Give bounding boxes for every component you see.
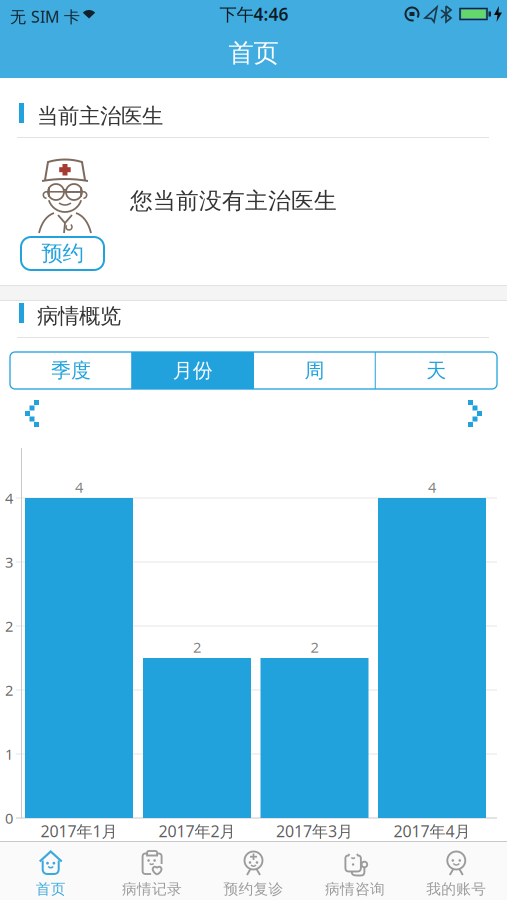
staticText: 我的账号 (426, 880, 486, 898)
staticText: 3 (5, 552, 13, 572)
staticText: 2017年4月 (393, 820, 470, 842)
button[interactable]: 下一页 (466, 399, 484, 427)
staticText: 预约 (41, 240, 83, 267)
staticText: 4 (428, 477, 436, 497)
staticText: 病情记录 (122, 880, 182, 898)
staticText: 预约复诊 (223, 880, 283, 898)
button[interactable]: 季度 (10, 352, 132, 389)
staticText: 2017年1月 (40, 820, 117, 842)
staticText: 4 (75, 477, 83, 497)
button[interactable]: 首页 (0, 840, 101, 900)
staticText: 4 (5, 488, 13, 508)
button[interactable]: 我的账号 (406, 840, 507, 900)
button[interactable]: 月份 (132, 352, 254, 389)
staticText: 1 (5, 744, 13, 764)
button[interactable]: 预约 (21, 237, 104, 270)
staticText: 2017年2月 (158, 820, 235, 842)
staticText: 月份 (173, 358, 213, 383)
staticText: 病情咨询 (325, 880, 385, 898)
staticText: 下午4:46 (219, 2, 288, 25)
staticText: 0 (5, 808, 13, 828)
staticText: 首页 (36, 880, 66, 898)
button[interactable]: 病情咨询 (304, 840, 406, 900)
staticText: 病情概览 (37, 303, 121, 329)
staticText: 无 SIM 卡 (10, 6, 80, 27)
staticText: 2 (5, 616, 13, 636)
button[interactable]: 周 (253, 352, 375, 389)
staticText: 2 (193, 637, 201, 657)
staticText: 天 (426, 358, 446, 383)
staticText: 首页 (228, 37, 278, 68)
staticText: 2017年3月 (276, 820, 353, 842)
button[interactable]: 天 (375, 352, 497, 389)
button[interactable]: 预约复诊 (203, 840, 304, 900)
staticText: 2 (310, 637, 318, 657)
staticText: 当前主治医生 (37, 103, 163, 129)
staticText: 2 (5, 680, 13, 700)
staticText: 您当前没有主治医生 (130, 187, 337, 215)
button[interactable]: 上一页 (23, 399, 41, 427)
staticText: 周 (304, 358, 324, 383)
button[interactable]: 病情记录 (101, 840, 203, 900)
staticText: 季度 (51, 358, 91, 383)
